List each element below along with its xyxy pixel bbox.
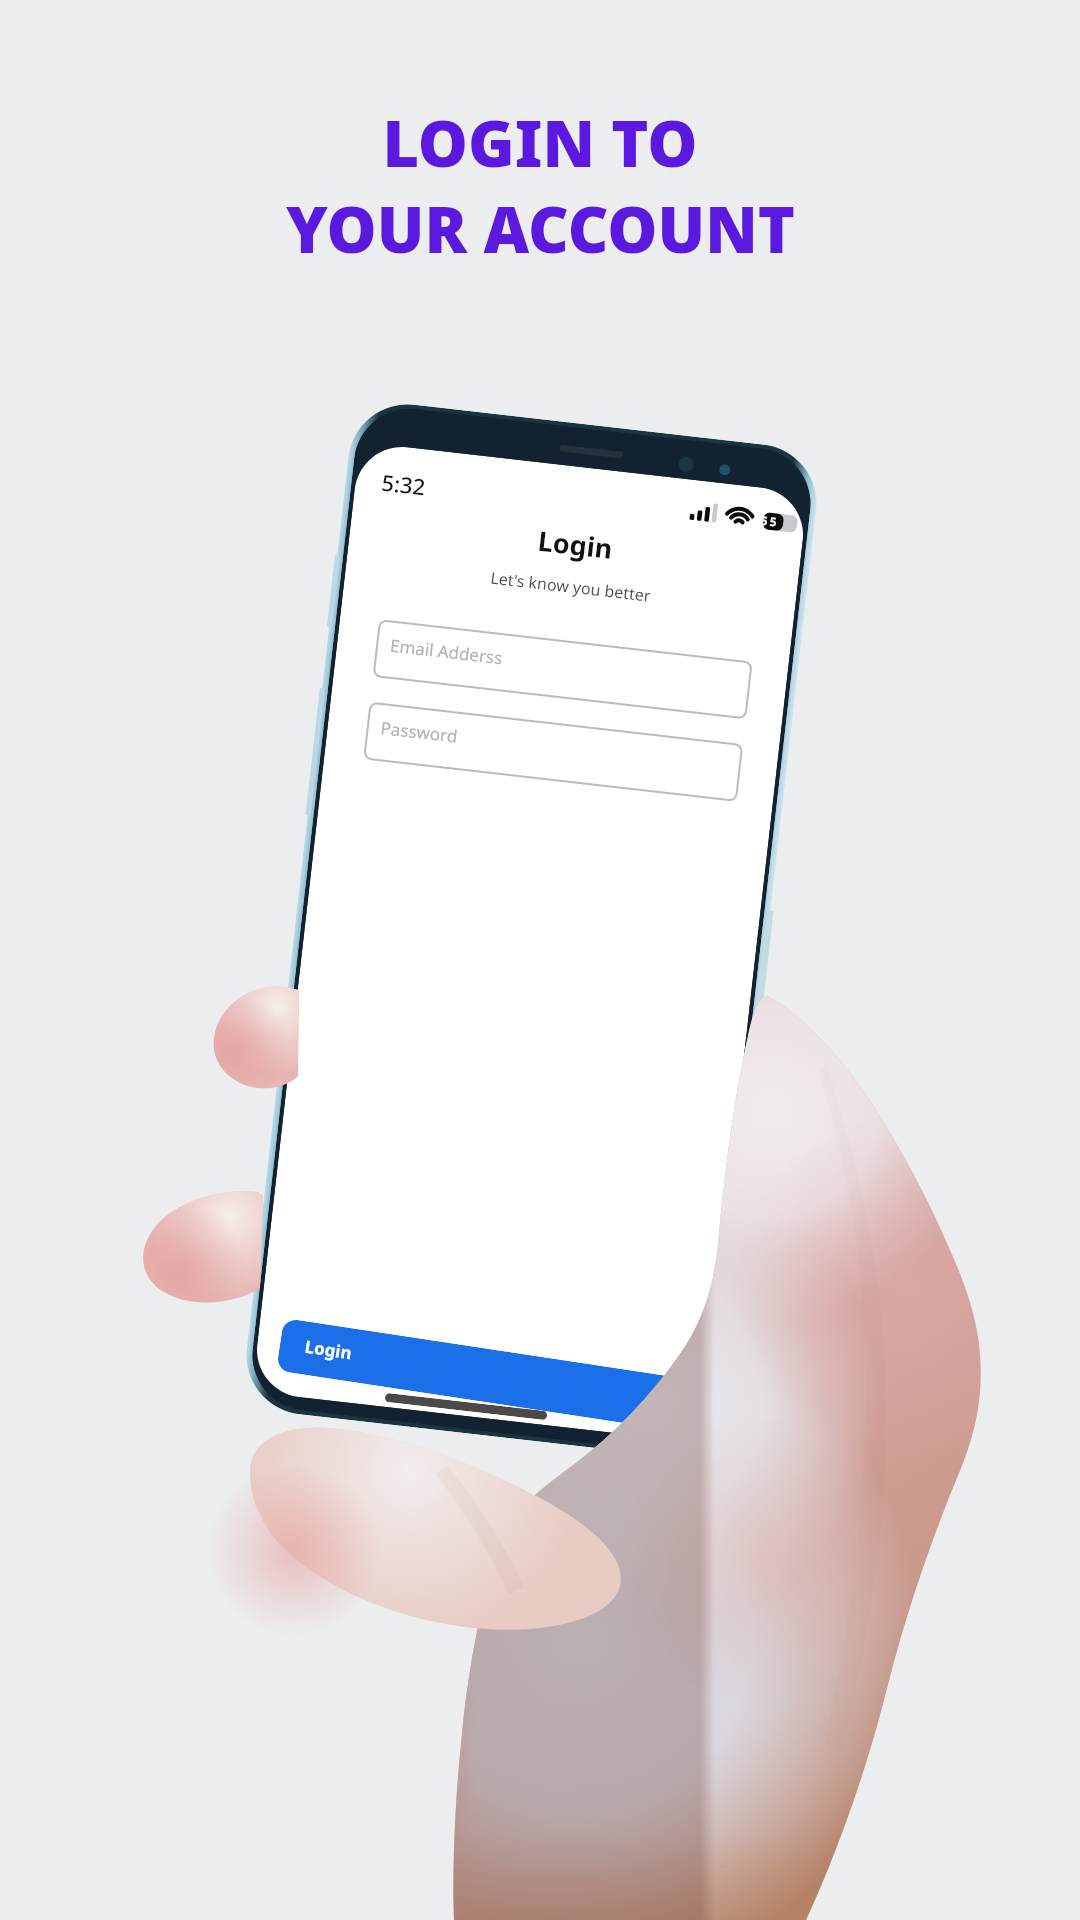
button[interactable]: Login [276, 1318, 699, 1433]
button[interactable]: Power [755, 910, 774, 1022]
button[interactable]: Volume up [327, 555, 340, 627]
staticText: 5 [760, 512, 769, 528]
staticText: Email Adderss [389, 634, 504, 669]
staticText: YOUR ACCOUNT [286, 186, 795, 272]
staticText: Password [380, 716, 459, 748]
button[interactable]: Password [363, 702, 743, 802]
staticText: Login [303, 1335, 354, 1364]
button[interactable]: Home [385, 1393, 548, 1420]
staticText: 5:32 [380, 467, 427, 501]
button[interactable]: Email Adderss [373, 619, 753, 719]
button[interactable]: Volume down [305, 688, 325, 816]
staticText: 5 [769, 513, 778, 529]
staticText: Login [349, 500, 801, 588]
staticText: LOGIN TO [382, 100, 698, 186]
staticText: Let's know you better [345, 550, 796, 623]
